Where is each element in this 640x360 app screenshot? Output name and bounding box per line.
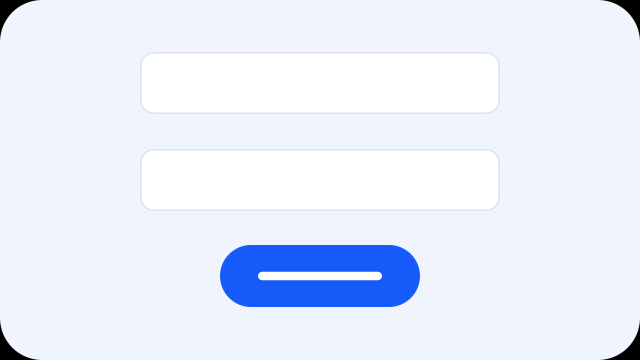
button[interactable]: Email field [140,52,500,114]
button[interactable]: Continue [220,245,420,307]
button[interactable]: Password field [140,149,500,211]
